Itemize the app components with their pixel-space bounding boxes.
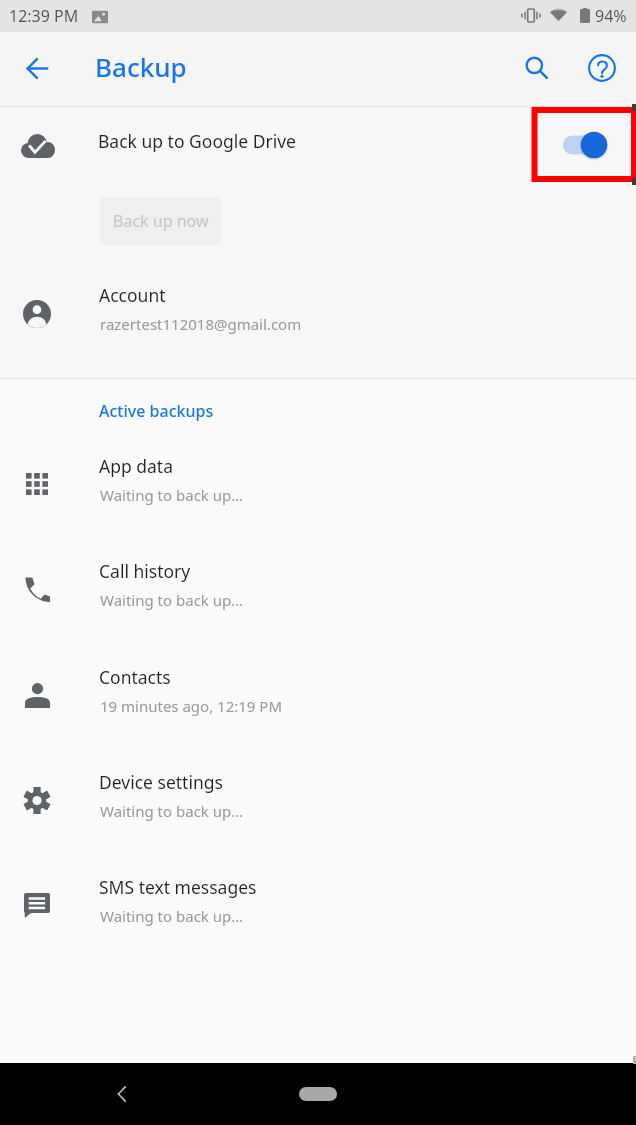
button[interactable]: Contacts [0, 639, 636, 744]
staticText: 94% [595, 5, 627, 27]
staticText: Waiting to back up… [100, 801, 244, 821]
button[interactable]: Search [509, 40, 565, 96]
staticText: Waiting to back up… [100, 485, 244, 505]
button[interactable]: Back [98, 1070, 146, 1118]
staticText: Call history [99, 559, 191, 583]
button[interactable]: Back up now [100, 197, 221, 245]
button[interactable]: Device settings [0, 744, 636, 849]
staticText: 19 minutes ago, 12:19 PM [100, 696, 283, 716]
staticText: Device settings [99, 770, 223, 794]
staticText: Backup [95, 49, 187, 84]
button[interactable]: Navigate up [9, 40, 65, 96]
button[interactable]: Back up to Google Drive [0, 107, 636, 182]
button[interactable]: Call history [0, 533, 636, 638]
staticText: Waiting to back up… [100, 906, 244, 926]
button[interactable]: App data [0, 428, 636, 533]
staticText: Contacts [99, 665, 171, 689]
button[interactable]: Back up to Google Drive [551, 127, 613, 163]
staticText: Account [99, 283, 166, 307]
staticText: Back up now [113, 210, 209, 232]
staticText: Back up to Google Drive [98, 129, 296, 153]
staticText: razertest112018@gmail.com [100, 314, 302, 334]
button[interactable]: Help [574, 40, 630, 96]
button[interactable]: Account [0, 266, 636, 356]
staticText: 12:39 PM [9, 5, 79, 27]
staticText: App data [99, 454, 173, 478]
button[interactable]: Home [283, 1076, 353, 1112]
staticText: SMS text messages [99, 875, 257, 899]
staticText: Active backups [99, 400, 214, 422]
button[interactable]: SMS text messages [0, 849, 636, 954]
staticText: Waiting to back up… [100, 590, 244, 610]
